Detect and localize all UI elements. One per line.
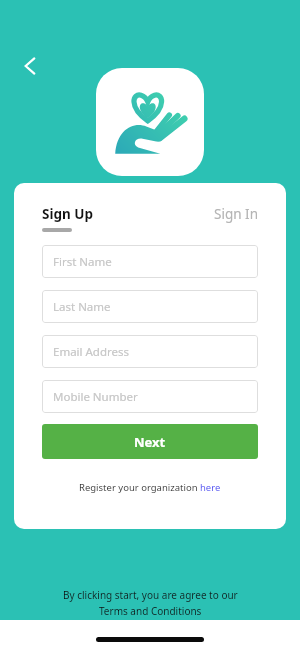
staticText: Terms and Conditions	[99, 604, 202, 618]
button[interactable]: First Name	[42, 245, 258, 278]
button[interactable]: Last Name	[42, 290, 258, 323]
staticText: Next	[134, 433, 166, 451]
button[interactable]: Mobile Number	[42, 380, 258, 413]
staticText: Mobile Number	[53, 389, 138, 405]
button[interactable]: Next	[42, 424, 258, 459]
button[interactable]: Back	[11, 47, 49, 85]
staticText: Sign Up	[42, 205, 94, 223]
button[interactable]: Terms and Conditions	[99, 604, 202, 618]
button[interactable]: Sign In	[214, 205, 258, 223]
button[interactable]: Email Address	[42, 335, 258, 368]
button[interactable]: here	[200, 481, 221, 494]
staticText: By clicking start, you are agree to our	[63, 588, 238, 602]
staticText: Last Name	[53, 299, 111, 315]
staticText: here	[200, 481, 221, 494]
staticText: Sign In	[214, 205, 258, 223]
staticText: Email Address	[53, 344, 130, 360]
staticText: Register your organization	[79, 481, 200, 494]
button[interactable]: Sign Up	[42, 205, 94, 232]
staticText: First Name	[53, 254, 112, 270]
